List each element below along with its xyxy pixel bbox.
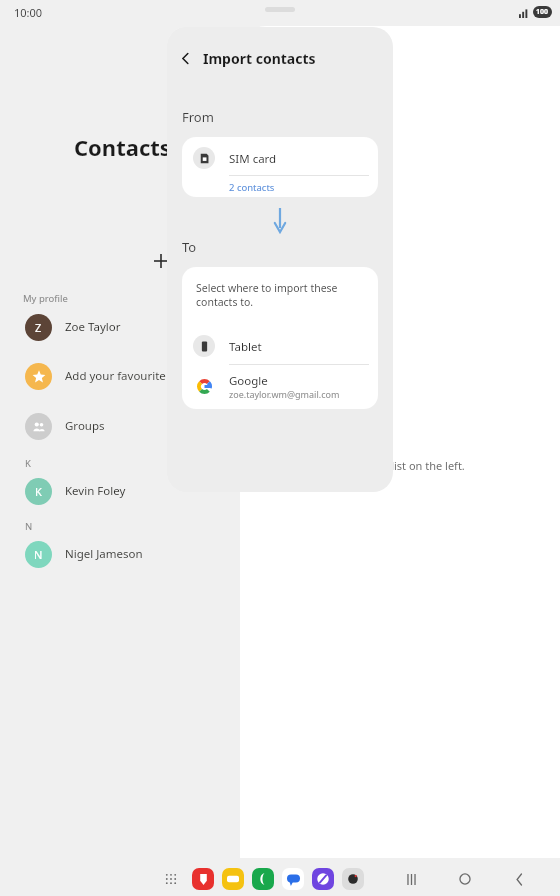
button[interactable]: K xyxy=(10,477,240,505)
staticText: K xyxy=(25,457,31,470)
button[interactable]: Back xyxy=(502,862,536,896)
staticText: Google xyxy=(229,373,268,389)
staticText: Contacts xyxy=(74,132,171,162)
staticText: SIM card xyxy=(229,151,277,167)
staticText: Kevin Foley xyxy=(65,483,126,499)
button[interactable]: Z xyxy=(10,313,240,341)
button[interactable]: Notes xyxy=(192,868,214,890)
staticText: 10:00 xyxy=(14,5,43,20)
staticText: Import contacts xyxy=(203,49,316,68)
staticText: N xyxy=(25,520,33,533)
button[interactable]: Tablet xyxy=(182,329,378,363)
staticText: 100 xyxy=(536,7,549,17)
staticText: Zoe Taylor xyxy=(65,319,121,335)
staticText: Groups xyxy=(65,418,105,434)
button[interactable]: Recents xyxy=(394,862,428,896)
button[interactable]: Apps xyxy=(158,866,184,892)
button[interactable]: Add contact xyxy=(148,248,174,274)
button[interactable]: Add your favourite contacts xyxy=(10,355,240,397)
staticText: Select where to import these contacts to… xyxy=(196,281,356,309)
staticText: zoe.taylor.wm@gmail.com xyxy=(229,388,340,400)
staticText: N xyxy=(34,547,43,562)
button[interactable]: Phone xyxy=(252,868,274,890)
button[interactable]: Home xyxy=(448,862,482,896)
button[interactable]: Files xyxy=(222,868,244,890)
staticText: Z xyxy=(35,320,42,335)
staticText: K xyxy=(35,484,42,499)
button[interactable]: Back xyxy=(167,41,203,75)
button[interactable]: N xyxy=(10,540,240,568)
button[interactable]: Google xyxy=(182,367,378,405)
button[interactable]: Messages xyxy=(282,868,304,890)
staticText: To xyxy=(182,238,197,256)
staticText: Tablet xyxy=(229,339,262,355)
button[interactable]: Internet xyxy=(312,868,334,890)
staticText: Add your favourite contacts xyxy=(65,368,215,384)
button[interactable]: Camera xyxy=(342,868,364,890)
staticText: From xyxy=(182,108,214,126)
staticText: Nigel Jameson xyxy=(65,546,143,562)
staticText: Select a contact from the list on the le… xyxy=(260,458,540,473)
staticText: 2 contacts xyxy=(229,181,275,194)
button[interactable]: SIM card xyxy=(182,137,378,197)
button[interactable]: Groups xyxy=(10,405,240,447)
staticText: My profile xyxy=(23,292,68,305)
